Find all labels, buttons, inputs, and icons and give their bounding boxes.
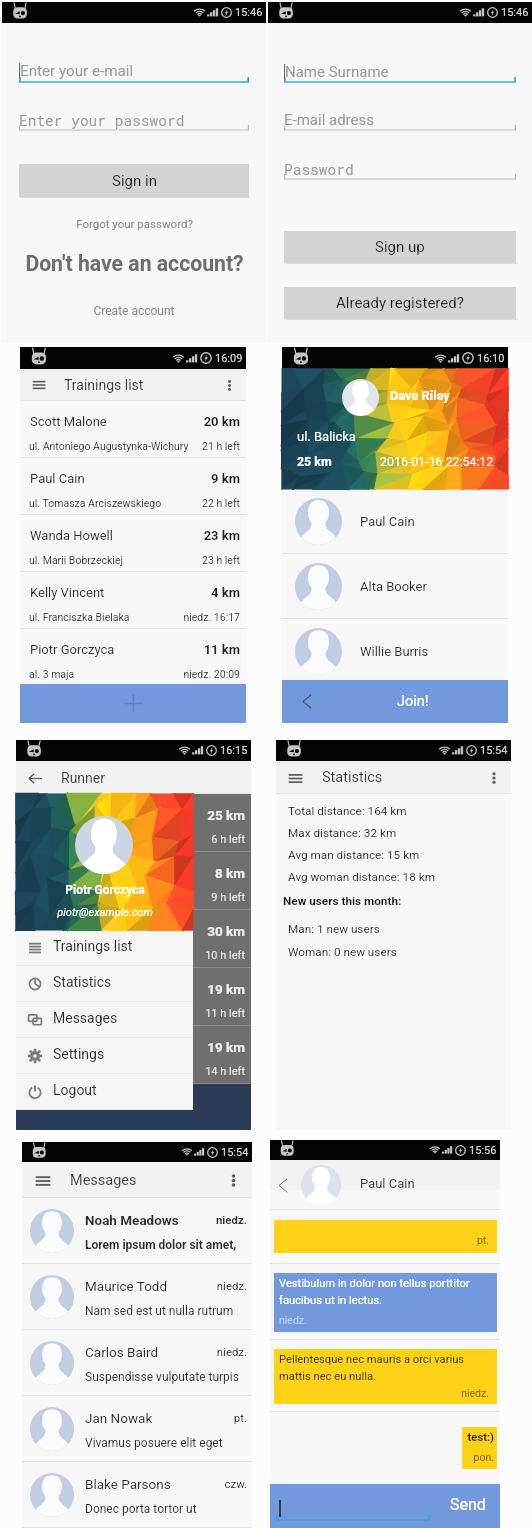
staticText: Sign in bbox=[112, 172, 157, 190]
staticText: Don't have an account? bbox=[25, 251, 244, 276]
button[interactable]: Enter your password bbox=[19, 110, 249, 134]
button[interactable]: Open navigation menu bbox=[26, 372, 52, 398]
button[interactable]: More options bbox=[216, 372, 242, 398]
staticText: 14 h left bbox=[205, 1065, 245, 1078]
button[interactable]: Join! bbox=[332, 680, 494, 723]
staticText: 16:15 bbox=[220, 744, 248, 757]
staticText: Piotr Gorczyca bbox=[30, 642, 115, 657]
staticText: test:) bbox=[467, 1431, 494, 1444]
button[interactable]: Wanda Howell bbox=[20, 515, 246, 572]
staticText: Forgot your password? bbox=[76, 217, 193, 230]
button[interactable]: Willie Burris bbox=[282, 619, 508, 684]
button[interactable]: Open navigation menu bbox=[282, 765, 308, 791]
staticText: pon. bbox=[473, 1451, 494, 1463]
staticText: Avg man distance: 15 km bbox=[288, 848, 420, 862]
staticText: Pellentesque nec mauris a orci varius bbox=[279, 1353, 465, 1366]
button[interactable]: Settings bbox=[16, 1038, 193, 1074]
button[interactable]: Enter your e-mail bbox=[19, 62, 249, 86]
button[interactable]: Open navigation menu bbox=[28, 1166, 57, 1195]
button[interactable]: Password bbox=[284, 159, 516, 183]
staticText: New users this month: bbox=[283, 894, 402, 908]
button[interactable]: Noah Meadows bbox=[22, 1198, 252, 1264]
button[interactable]: More options bbox=[481, 765, 507, 791]
staticText: 19 km bbox=[207, 1039, 245, 1055]
staticText: Maurice Todd bbox=[85, 1278, 168, 1294]
staticText: Settings bbox=[53, 1046, 105, 1062]
staticText: piotr@example.com bbox=[57, 906, 153, 919]
button[interactable]: Paul Cain bbox=[282, 489, 508, 554]
staticText: 10 h left bbox=[205, 949, 245, 962]
button[interactable]: Statistics bbox=[16, 966, 193, 1002]
staticText: Dave Riley bbox=[390, 388, 450, 403]
staticText: Password bbox=[284, 160, 354, 179]
staticText: Messages bbox=[53, 1010, 118, 1026]
button[interactable]: Sign up bbox=[284, 231, 516, 263]
staticText: 25 km bbox=[207, 807, 245, 823]
staticText: ul. Tomasza Arciszewskiego bbox=[29, 497, 162, 509]
staticText: czw. bbox=[224, 1477, 247, 1490]
staticText: 15:46 bbox=[501, 6, 529, 19]
staticText: 23 km bbox=[203, 528, 240, 543]
button[interactable]: Logout bbox=[16, 1074, 193, 1110]
button[interactable]: Sign in bbox=[19, 164, 249, 197]
button[interactable]: Blake Parsons bbox=[22, 1462, 252, 1528]
button[interactable]: Messages bbox=[16, 1002, 193, 1038]
button[interactable]: More options bbox=[219, 1166, 248, 1195]
staticText: Name Surname bbox=[285, 63, 389, 81]
staticText: Paul Cain bbox=[30, 471, 85, 486]
button[interactable]: Maurice Todd bbox=[22, 1264, 252, 1330]
staticText: niedz. bbox=[216, 1279, 247, 1292]
staticText: 16:10 bbox=[477, 352, 505, 365]
button[interactable]: Already registered? bbox=[284, 287, 516, 319]
button[interactable]: Alta Booker bbox=[282, 554, 508, 619]
staticText: Statistics bbox=[53, 974, 112, 990]
staticText: Logout bbox=[53, 1082, 97, 1098]
staticText: Messages bbox=[70, 1172, 137, 1189]
button[interactable]: Navigate up bbox=[22, 765, 48, 791]
staticText: 23 h left bbox=[201, 554, 240, 566]
staticText: Enter your password bbox=[19, 111, 185, 130]
button[interactable]: Back bbox=[271, 1173, 295, 1197]
staticText: 21 h left bbox=[201, 440, 240, 452]
staticText: 16:09 bbox=[215, 352, 243, 365]
staticText: Nam sed est ut nulla rutrum bbox=[85, 1304, 234, 1318]
button[interactable]: Kelly Vincent bbox=[20, 572, 246, 629]
staticText: Willie Burris bbox=[360, 644, 429, 659]
staticText: niedz. bbox=[215, 1213, 247, 1226]
button[interactable]: Carlos Baird bbox=[22, 1330, 252, 1396]
button[interactable]: Scott Malone bbox=[20, 401, 246, 458]
staticText: Vestibulum in dolor non tellus porttitor bbox=[279, 1277, 470, 1290]
button[interactable]: tellus et, fermentum sapien. bbox=[274, 1220, 497, 1253]
staticText: 30 km bbox=[207, 923, 245, 939]
button[interactable]: Back bbox=[282, 680, 332, 723]
staticText: 11 km bbox=[203, 642, 240, 657]
staticText: Donec porta tortor ut bbox=[85, 1502, 197, 1516]
button[interactable]: Paul Cain bbox=[20, 458, 246, 515]
button[interactable]: test:) bbox=[462, 1427, 497, 1469]
staticText: 15:54 bbox=[480, 744, 508, 757]
button[interactable]: E-mail adress bbox=[284, 110, 516, 134]
staticText: Join! bbox=[397, 693, 429, 710]
staticText: Piotr Gorczyca bbox=[65, 883, 145, 897]
staticText: Noah Meadows bbox=[85, 1212, 179, 1228]
button[interactable]: Vestibulum in dolor non tellus porttitor bbox=[274, 1273, 497, 1332]
staticText: Max distance: 32 km bbox=[288, 826, 397, 840]
button[interactable] bbox=[276, 1492, 430, 1522]
button[interactable]: Pellentesque nec mauris a orci varius bbox=[274, 1349, 497, 1404]
staticText: Already registered? bbox=[336, 294, 464, 312]
button[interactable]: Jan Nowak bbox=[22, 1396, 252, 1462]
button[interactable]: Name Surname bbox=[284, 62, 516, 86]
staticText: niedz. 20:09 bbox=[183, 668, 240, 680]
staticText: Trainings list bbox=[53, 938, 133, 954]
staticText: Sign up bbox=[375, 238, 425, 256]
staticText: al. 3 maja bbox=[29, 668, 75, 680]
staticText: Send bbox=[450, 1495, 486, 1514]
staticText: ul. Balicka bbox=[297, 429, 356, 444]
staticText: ul. Marii Bobrzeckiej bbox=[29, 554, 123, 566]
staticText: Enter your e-mail bbox=[20, 62, 134, 80]
button[interactable]: Trainings list bbox=[16, 930, 193, 966]
button[interactable]: Send bbox=[450, 1495, 486, 1514]
button[interactable]: Piotr Gorczyca bbox=[20, 629, 246, 686]
staticText: Statistics bbox=[322, 769, 383, 786]
